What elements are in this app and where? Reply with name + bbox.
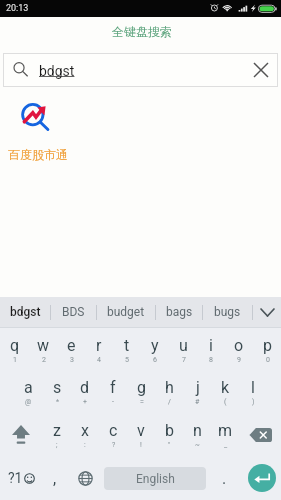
- button[interactable]: v: [127, 413, 155, 456]
- staticText: +: [83, 398, 87, 406]
- staticText: 4: [97, 356, 101, 364]
- button[interactable]: budget: [97, 297, 155, 327]
- staticText: bags: [166, 305, 193, 319]
- staticText: i: [209, 336, 213, 355]
- staticText: k: [221, 378, 230, 397]
- staticText: ;: [56, 441, 58, 449]
- button[interactable]: m: [211, 413, 239, 456]
- button[interactable]: i: [197, 328, 225, 371]
- staticText: 全键盘搜索: [112, 24, 172, 39]
- button[interactable]: e: [57, 328, 85, 371]
- button[interactable]: d: [71, 371, 99, 413]
- button[interactable]: p: [253, 328, 281, 371]
- button[interactable]: BDS: [51, 297, 96, 327]
- staticText: English: [136, 472, 175, 486]
- staticText: ): [252, 398, 255, 406]
- staticText: =: [140, 398, 144, 406]
- button[interactable]: More suggestions: [253, 297, 281, 327]
- button[interactable]: Backspace: [239, 413, 281, 456]
- staticText: e: [67, 336, 76, 355]
- button[interactable]: English: [104, 467, 206, 490]
- staticText: !: [140, 441, 142, 449]
- button[interactable]: 全键盘搜索: [0, 17, 281, 53]
- staticText: _: [224, 441, 228, 449]
- button[interactable]: t: [113, 328, 141, 371]
- staticText: #: [195, 398, 200, 406]
- staticText: j: [196, 378, 200, 397]
- staticText: 百度股市通: [8, 147, 68, 162]
- staticText: z: [53, 421, 61, 440]
- button[interactable]: u: [169, 328, 197, 371]
- button[interactable]: Change language: [67, 456, 104, 500]
- staticText: bdgst: [39, 63, 75, 79]
- staticText: l: [251, 378, 255, 397]
- button[interactable]: o: [225, 328, 253, 371]
- button[interactable]: j: [183, 371, 211, 413]
- button[interactable]: w: [29, 328, 57, 371]
- button[interactable]: Symbols: [0, 456, 42, 500]
- staticText: h: [165, 378, 174, 397]
- staticText: /: [168, 398, 171, 406]
- button[interactable]: k: [211, 371, 239, 413]
- button[interactable]: Enter: [248, 464, 276, 492]
- staticText: ": [168, 441, 171, 449]
- staticText: ?: [112, 441, 116, 449]
- staticText: q: [10, 336, 20, 355]
- staticText: 6: [153, 356, 157, 364]
- staticText: t: [124, 336, 130, 355]
- staticText: r: [96, 336, 102, 355]
- staticText: ?1: [8, 470, 23, 486]
- staticText: c: [109, 421, 118, 440]
- button[interactable]: .: [206, 456, 243, 500]
- button[interactable]: Clear: [244, 53, 278, 87]
- staticText: 1: [13, 356, 17, 364]
- staticText: 7: [182, 356, 186, 364]
- staticText: BDS: [62, 305, 85, 319]
- staticText: 8: [209, 356, 213, 364]
- button[interactable]: b: [155, 413, 183, 456]
- staticText: x: [81, 421, 89, 440]
- staticText: 0: [266, 356, 270, 364]
- button[interactable]: 百度股市通: [2, 103, 66, 162]
- staticText: budget: [107, 305, 145, 319]
- button[interactable]: bdgst: [0, 297, 50, 327]
- staticText: ,: [53, 469, 57, 488]
- button[interactable]: f: [99, 371, 127, 413]
- button[interactable]: z: [42, 413, 71, 456]
- button[interactable]: bags: [156, 297, 202, 327]
- button[interactable]: g: [127, 371, 155, 413]
- staticText: w: [37, 336, 50, 355]
- button[interactable]: Shift: [0, 413, 42, 456]
- staticText: @: [25, 398, 32, 406]
- staticText: 20:13: [6, 3, 29, 14]
- staticText: f: [110, 378, 116, 397]
- staticText: 3: [70, 356, 74, 364]
- staticText: m: [218, 421, 233, 440]
- button[interactable]: x: [71, 413, 99, 456]
- staticText: -: [112, 398, 114, 406]
- staticText: 9: [237, 356, 241, 364]
- button[interactable]: s: [43, 371, 71, 413]
- button[interactable]: n: [183, 413, 211, 456]
- staticText: 2: [42, 356, 46, 364]
- staticText: o: [234, 336, 244, 355]
- button[interactable]: r: [85, 328, 113, 371]
- staticText: 5: [125, 356, 129, 364]
- button[interactable]: c: [99, 413, 127, 456]
- button[interactable]: y: [141, 328, 169, 371]
- staticText: g: [137, 378, 146, 397]
- staticText: ~: [195, 441, 200, 449]
- button[interactable]: a: [14, 371, 43, 413]
- staticText: v: [137, 421, 145, 440]
- button[interactable]: l: [239, 371, 267, 413]
- button[interactable]: ,: [42, 456, 67, 500]
- button[interactable]: h: [155, 371, 183, 413]
- staticText: bdgst: [10, 305, 41, 319]
- button[interactable]: bugs: [203, 297, 252, 327]
- staticText: y: [151, 336, 159, 355]
- staticText: a: [24, 378, 33, 397]
- staticText: u: [179, 336, 188, 355]
- staticText: p: [263, 336, 272, 355]
- staticText: :: [84, 441, 86, 449]
- button[interactable]: q: [0, 328, 29, 371]
